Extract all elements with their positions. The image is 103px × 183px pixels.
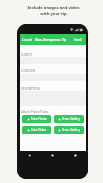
staticText: Cancel: [22, 38, 32, 42]
button[interactable]: Back: [27, 153, 32, 158]
staticText: New Anonymous Tip: [35, 38, 67, 42]
staticText: Attach Photo/Video: [21, 110, 49, 114]
staticText: with your tip.: [40, 11, 68, 17]
staticText: Take Video: [31, 128, 47, 132]
button[interactable]: Cancel: [20, 36, 34, 44]
staticText: DESCRIPTION: [21, 87, 40, 91]
button[interactable]: Recents: [73, 153, 78, 158]
button[interactable]: From Gallery: [54, 115, 84, 123]
staticText: LOCATION: [21, 69, 36, 73]
button[interactable]: Send: [72, 36, 86, 44]
staticText: From Gallery: [62, 128, 81, 132]
staticText: From Gallery: [62, 117, 81, 121]
staticText: Send: [74, 38, 82, 42]
staticText: Include images and video: [27, 5, 80, 11]
button[interactable]: Home: [50, 153, 55, 158]
button[interactable]: From Gallery: [54, 126, 84, 134]
button[interactable]: Take Photo: [22, 115, 51, 123]
button[interactable]: Take Video: [22, 126, 51, 134]
staticText: Take Photo: [31, 117, 47, 121]
staticText: SUBJECT: [21, 53, 33, 57]
